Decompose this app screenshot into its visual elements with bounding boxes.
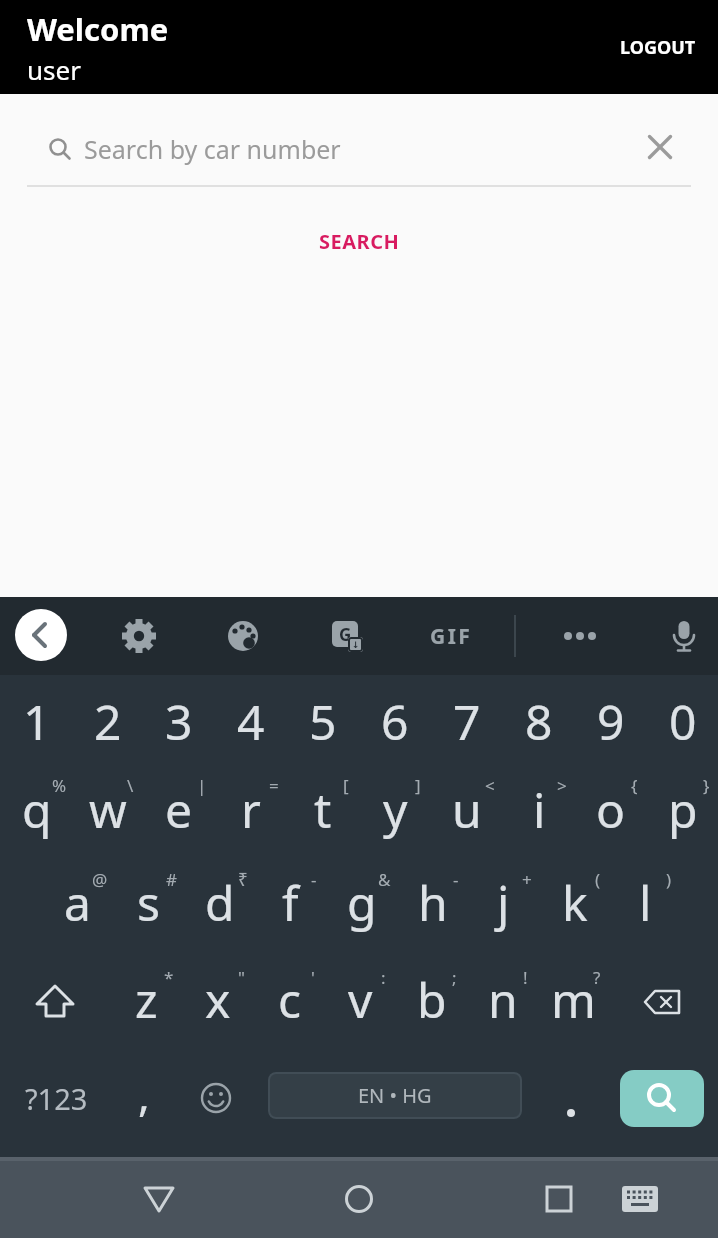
button[interactable]: n <box>466 955 537 1052</box>
button[interactable]: b <box>395 955 466 1052</box>
button[interactable]: G <box>323 612 371 660</box>
staticText: w <box>89 777 127 842</box>
button[interactable] <box>135 1175 183 1223</box>
button[interactable] <box>15 609 67 661</box>
button[interactable] <box>660 612 708 660</box>
button[interactable]: y <box>358 768 430 858</box>
button[interactable]: SEARCH <box>309 224 410 259</box>
button[interactable]: Search by car number <box>0 94 718 185</box>
staticText: k <box>562 870 588 935</box>
staticText: ) <box>666 868 672 891</box>
staticText: c <box>278 967 302 1032</box>
button[interactable]: e <box>142 768 214 858</box>
button[interactable]: LOGOUT <box>612 27 704 68</box>
staticText: x <box>205 967 231 1032</box>
staticText: " <box>238 966 245 989</box>
staticText: & <box>378 868 391 891</box>
staticText: : <box>381 966 386 989</box>
staticText: Search by car number <box>84 132 341 166</box>
button[interactable]: m <box>537 955 608 1052</box>
staticText: 3 <box>165 689 193 754</box>
button[interactable]: EN • HG <box>268 1072 522 1119</box>
staticText: ↓ <box>352 640 360 650</box>
button[interactable]: 0 <box>646 675 718 768</box>
staticText: z <box>135 967 158 1032</box>
staticText: , <box>138 1064 150 1124</box>
staticText: j <box>497 870 510 935</box>
staticText: 8 <box>525 689 553 754</box>
button[interactable] <box>616 1175 664 1223</box>
button[interactable]: q <box>0 768 71 858</box>
button[interactable]: z <box>109 955 181 1052</box>
button[interactable]: p <box>646 768 718 858</box>
button[interactable]: 1 <box>0 675 71 768</box>
button[interactable]: j <box>467 858 538 955</box>
staticText: + <box>522 868 532 891</box>
button[interactable]: 2 <box>71 675 142 768</box>
button[interactable]: c <box>253 955 324 1052</box>
button[interactable]: s <box>112 858 183 955</box>
staticText: 5 <box>309 689 337 754</box>
button[interactable]: v <box>324 955 395 1052</box>
button[interactable]: 4 <box>214 675 286 768</box>
staticText: n <box>488 967 518 1032</box>
staticText: { <box>631 774 638 797</box>
button[interactable] <box>608 955 718 1052</box>
button[interactable]: l <box>609 858 680 955</box>
button[interactable]: r <box>214 768 286 858</box>
button[interactable]: o <box>574 768 646 858</box>
staticText: ?123 <box>25 1079 88 1118</box>
staticText: SEARCH <box>319 228 400 255</box>
button[interactable]: f <box>254 858 325 955</box>
button[interactable] <box>638 125 682 169</box>
button[interactable]: g <box>325 858 396 955</box>
staticText: l <box>639 870 652 935</box>
staticText: LOGOUT <box>620 35 696 60</box>
button[interactable]: w <box>71 768 142 858</box>
staticText: \ <box>127 774 134 797</box>
staticText: y <box>383 777 408 842</box>
staticText: ( <box>595 868 601 891</box>
staticText: # <box>166 868 177 891</box>
staticText: = <box>269 774 279 797</box>
staticText: f <box>282 870 299 935</box>
staticText: 4 <box>237 689 265 754</box>
staticText: 9 <box>597 689 625 754</box>
button[interactable]: t <box>286 768 358 858</box>
button[interactable]: 9 <box>574 675 646 768</box>
button[interactable]: 3 <box>142 675 214 768</box>
staticText: 7 <box>453 689 481 754</box>
button[interactable]: x <box>181 955 253 1052</box>
staticText: [ <box>343 774 349 797</box>
button[interactable]: ?123 <box>8 1068 104 1128</box>
button[interactable] <box>0 955 109 1052</box>
button[interactable]: h <box>396 858 467 955</box>
button[interactable] <box>335 1175 383 1223</box>
button[interactable] <box>219 612 267 660</box>
button[interactable]: 8 <box>502 675 574 768</box>
button[interactable] <box>556 612 604 660</box>
button[interactable]: 7 <box>430 675 502 768</box>
staticText: ? <box>593 966 601 989</box>
button[interactable] <box>535 1175 583 1223</box>
button[interactable]: i <box>502 768 574 858</box>
button[interactable]: d <box>183 858 254 955</box>
button[interactable]: a <box>40 858 112 955</box>
button[interactable]: 6 <box>358 675 430 768</box>
staticText: i <box>533 777 546 842</box>
staticText: v <box>348 967 373 1032</box>
staticText: % <box>52 774 67 797</box>
staticText: GIF <box>430 622 473 651</box>
staticText: b <box>417 967 447 1032</box>
button[interactable] <box>186 1068 246 1128</box>
button[interactable]: 5 <box>286 675 358 768</box>
button[interactable]: k <box>538 858 609 955</box>
button[interactable]: GIF <box>427 612 475 660</box>
button[interactable]: , <box>114 1068 174 1128</box>
button[interactable] <box>541 1083 601 1143</box>
button[interactable]: u <box>430 768 502 858</box>
button[interactable] <box>620 1070 704 1127</box>
button[interactable] <box>115 612 163 660</box>
staticText: > <box>557 774 567 797</box>
staticText: user <box>27 52 81 87</box>
